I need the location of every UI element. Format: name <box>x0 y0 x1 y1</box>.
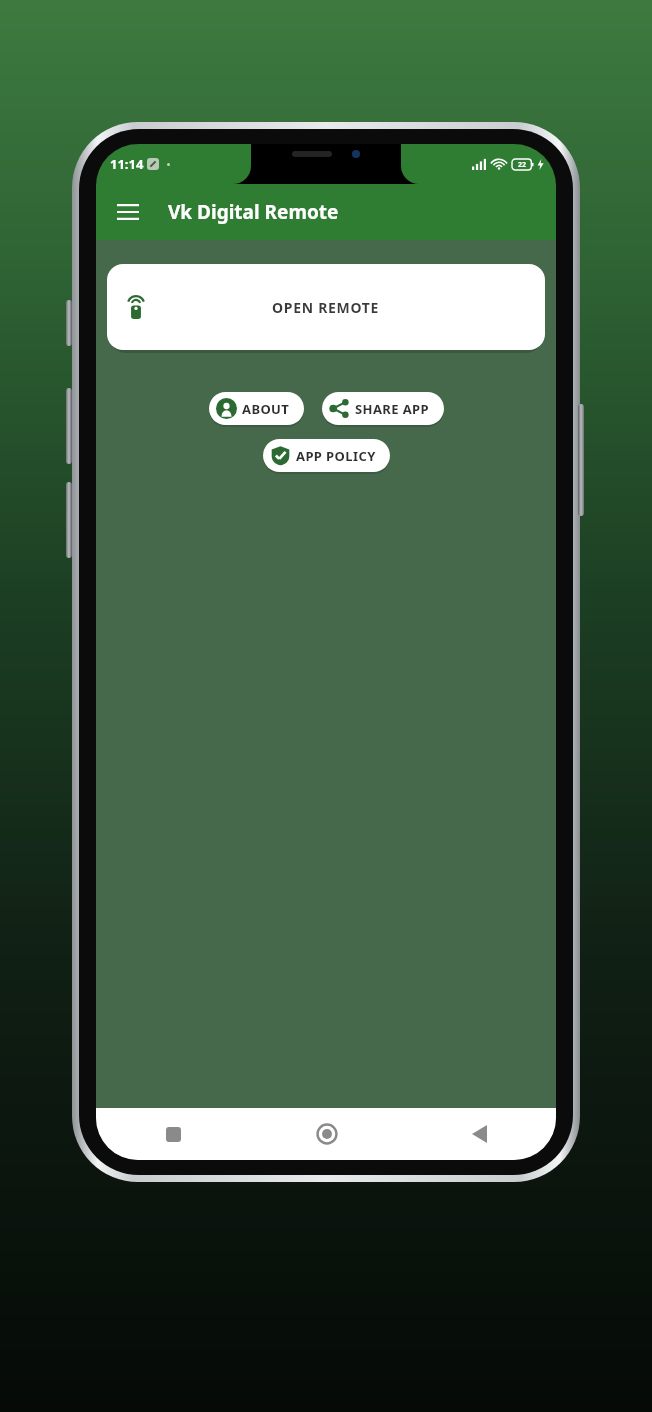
staticText: Vk Digital Remote <box>168 199 339 225</box>
button[interactable]: ABOUT <box>209 392 304 425</box>
button[interactable]: Home <box>250 1108 403 1160</box>
button[interactable]: SHARE APP <box>322 392 444 425</box>
staticText: SHARE APP <box>355 400 430 418</box>
button[interactable]: Open navigation menu <box>104 188 152 236</box>
button[interactable]: Back <box>403 1108 556 1160</box>
staticText: 22 <box>518 160 527 170</box>
button[interactable]: OPEN REMOTE <box>107 264 545 350</box>
staticText: APP POLICY <box>296 447 376 465</box>
button[interactable]: Recent apps <box>96 1108 250 1160</box>
button[interactable]: APP POLICY <box>263 439 390 472</box>
staticText: OPEN REMOTE <box>272 298 380 317</box>
staticText: ABOUT <box>242 400 290 418</box>
staticText: 11:14 <box>110 155 144 173</box>
